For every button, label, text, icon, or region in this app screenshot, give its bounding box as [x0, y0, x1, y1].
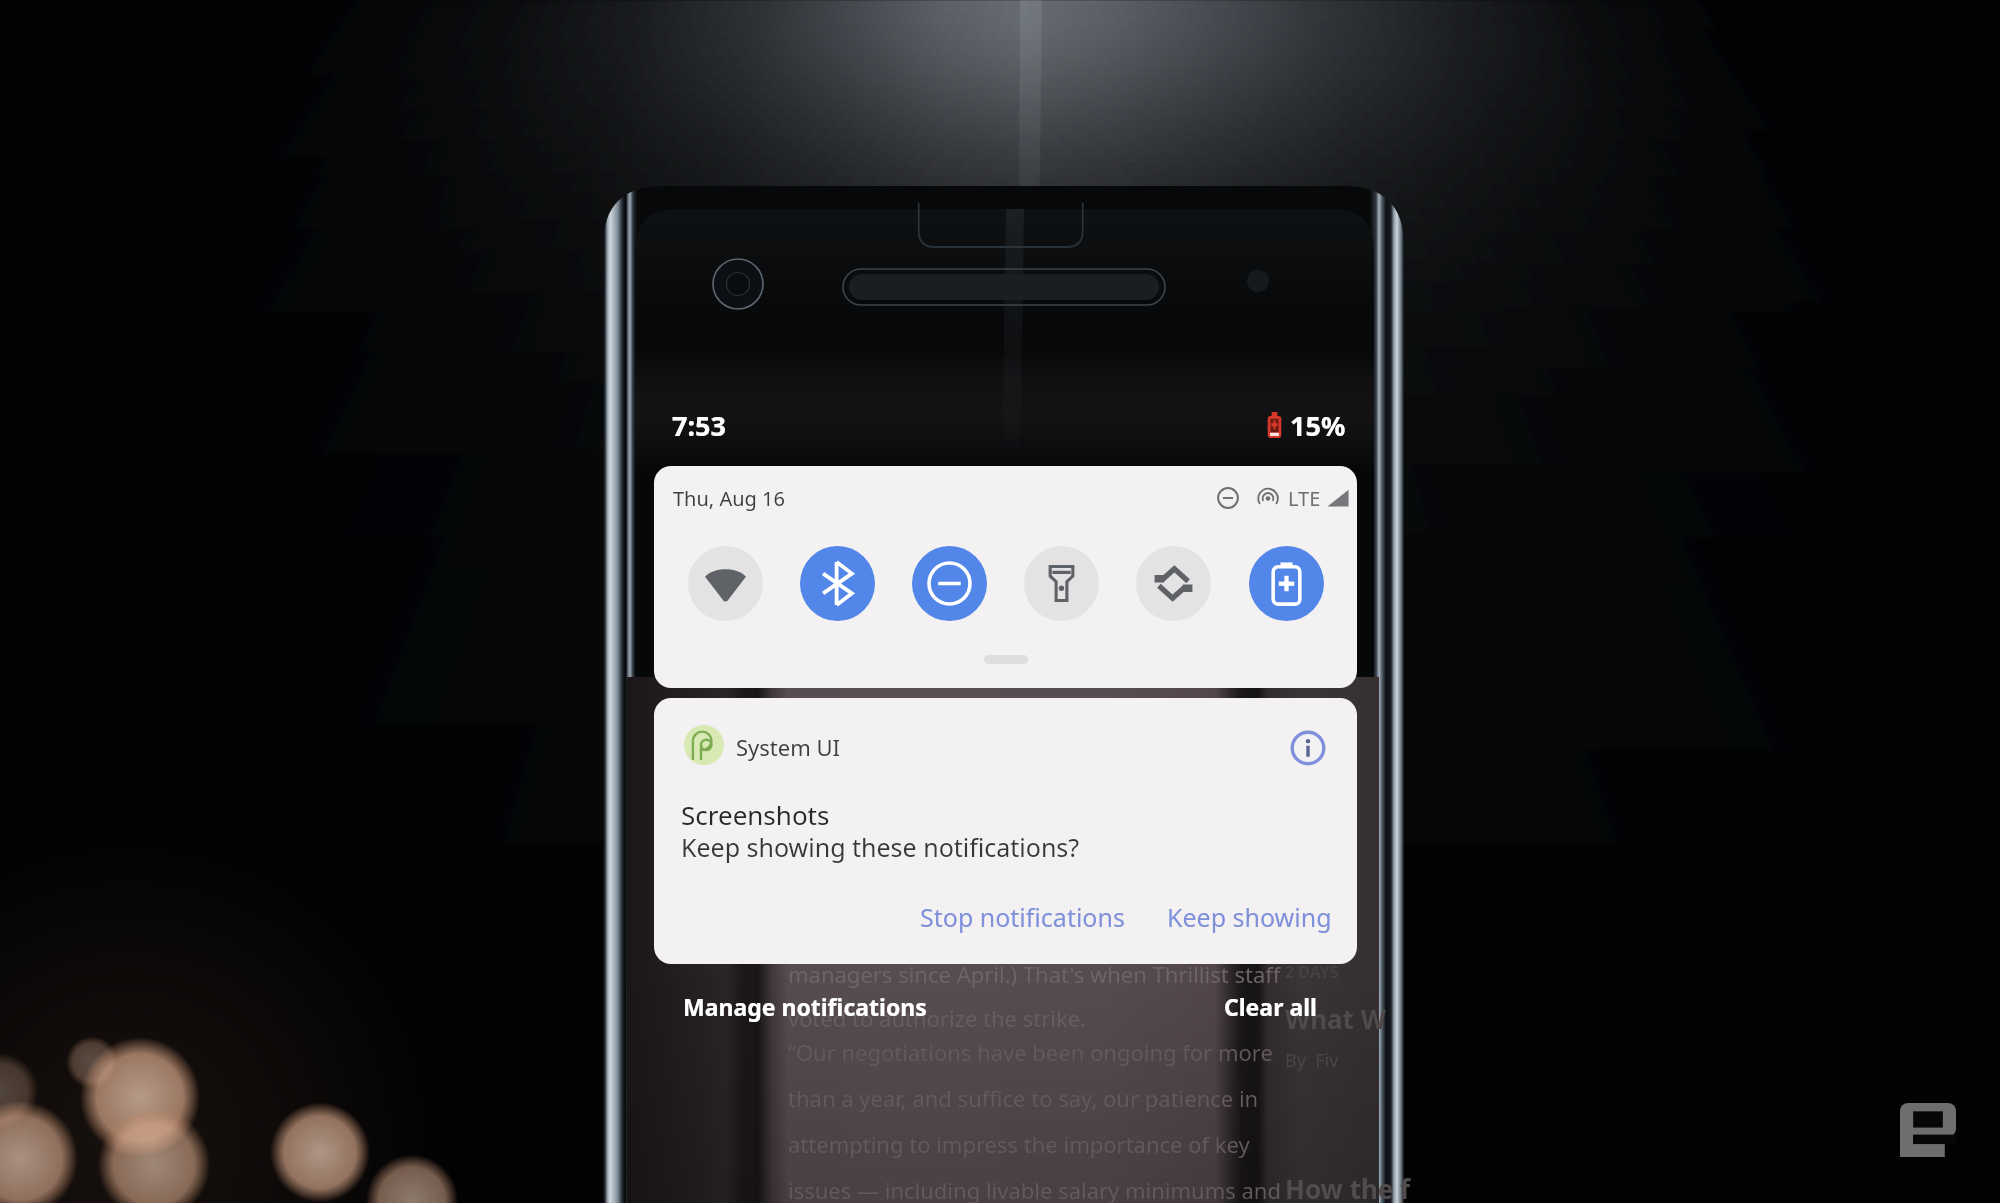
staticText: System UI — [736, 732, 841, 762]
other: Battery 15 percent — [1266, 412, 1283, 438]
staticText: 7:53 — [672, 407, 726, 444]
button[interactable]: Hotspot — [1257, 487, 1279, 509]
button[interactable]: Do not disturb on — [1217, 487, 1239, 509]
button[interactable]: Do not disturb — [912, 546, 987, 621]
staticText: issues — including livable salary minimu… — [788, 1175, 1281, 1203]
staticText: How the f — [1285, 1171, 1411, 1203]
button[interactable]: System UI — [654, 698, 1357, 964]
staticText: 2 DAYS — [1285, 961, 1339, 983]
button[interactable]: Manage notifications — [681, 989, 929, 1024]
button[interactable]: Flashlight — [1024, 546, 1099, 621]
staticText: 15% — [1290, 407, 1346, 444]
button[interactable]: Battery saver — [1249, 546, 1324, 621]
button[interactable]: Wi-Fi — [688, 546, 763, 621]
staticText: What W — [1285, 1001, 1386, 1036]
staticText: managers since April.) That's when Thril… — [788, 959, 1281, 989]
staticText: than a year, and suffice to say, our pat… — [788, 1083, 1259, 1113]
staticText: Keep showing — [1167, 900, 1332, 934]
button[interactable]: Mobile signal — [1327, 488, 1349, 509]
staticText: Thu, Aug 16 — [673, 485, 785, 512]
other: Engadget — [1900, 1103, 1956, 1157]
staticText: Keep showing these notifications? — [681, 830, 1080, 864]
staticText: attempting to impress the importance of … — [788, 1129, 1250, 1159]
button[interactable]: Bluetooth — [800, 546, 875, 621]
staticText: “Our negotiations have been ongoing for … — [788, 1037, 1273, 1067]
button[interactable]: More information — [1290, 730, 1326, 766]
staticText: Stop notifications — [920, 900, 1125, 934]
button[interactable]: Auto rotate — [1136, 546, 1211, 621]
button[interactable]: Clear all — [1222, 989, 1319, 1024]
button[interactable]: Stop notifications — [910, 891, 1135, 943]
staticText: Screenshots — [681, 797, 830, 832]
button[interactable]: Keep showing — [1157, 891, 1342, 943]
staticText: voted to authorize the strike. — [788, 1003, 1087, 1033]
staticText: By Fiv — [1285, 1048, 1339, 1073]
staticText: LTE — [1288, 485, 1321, 512]
